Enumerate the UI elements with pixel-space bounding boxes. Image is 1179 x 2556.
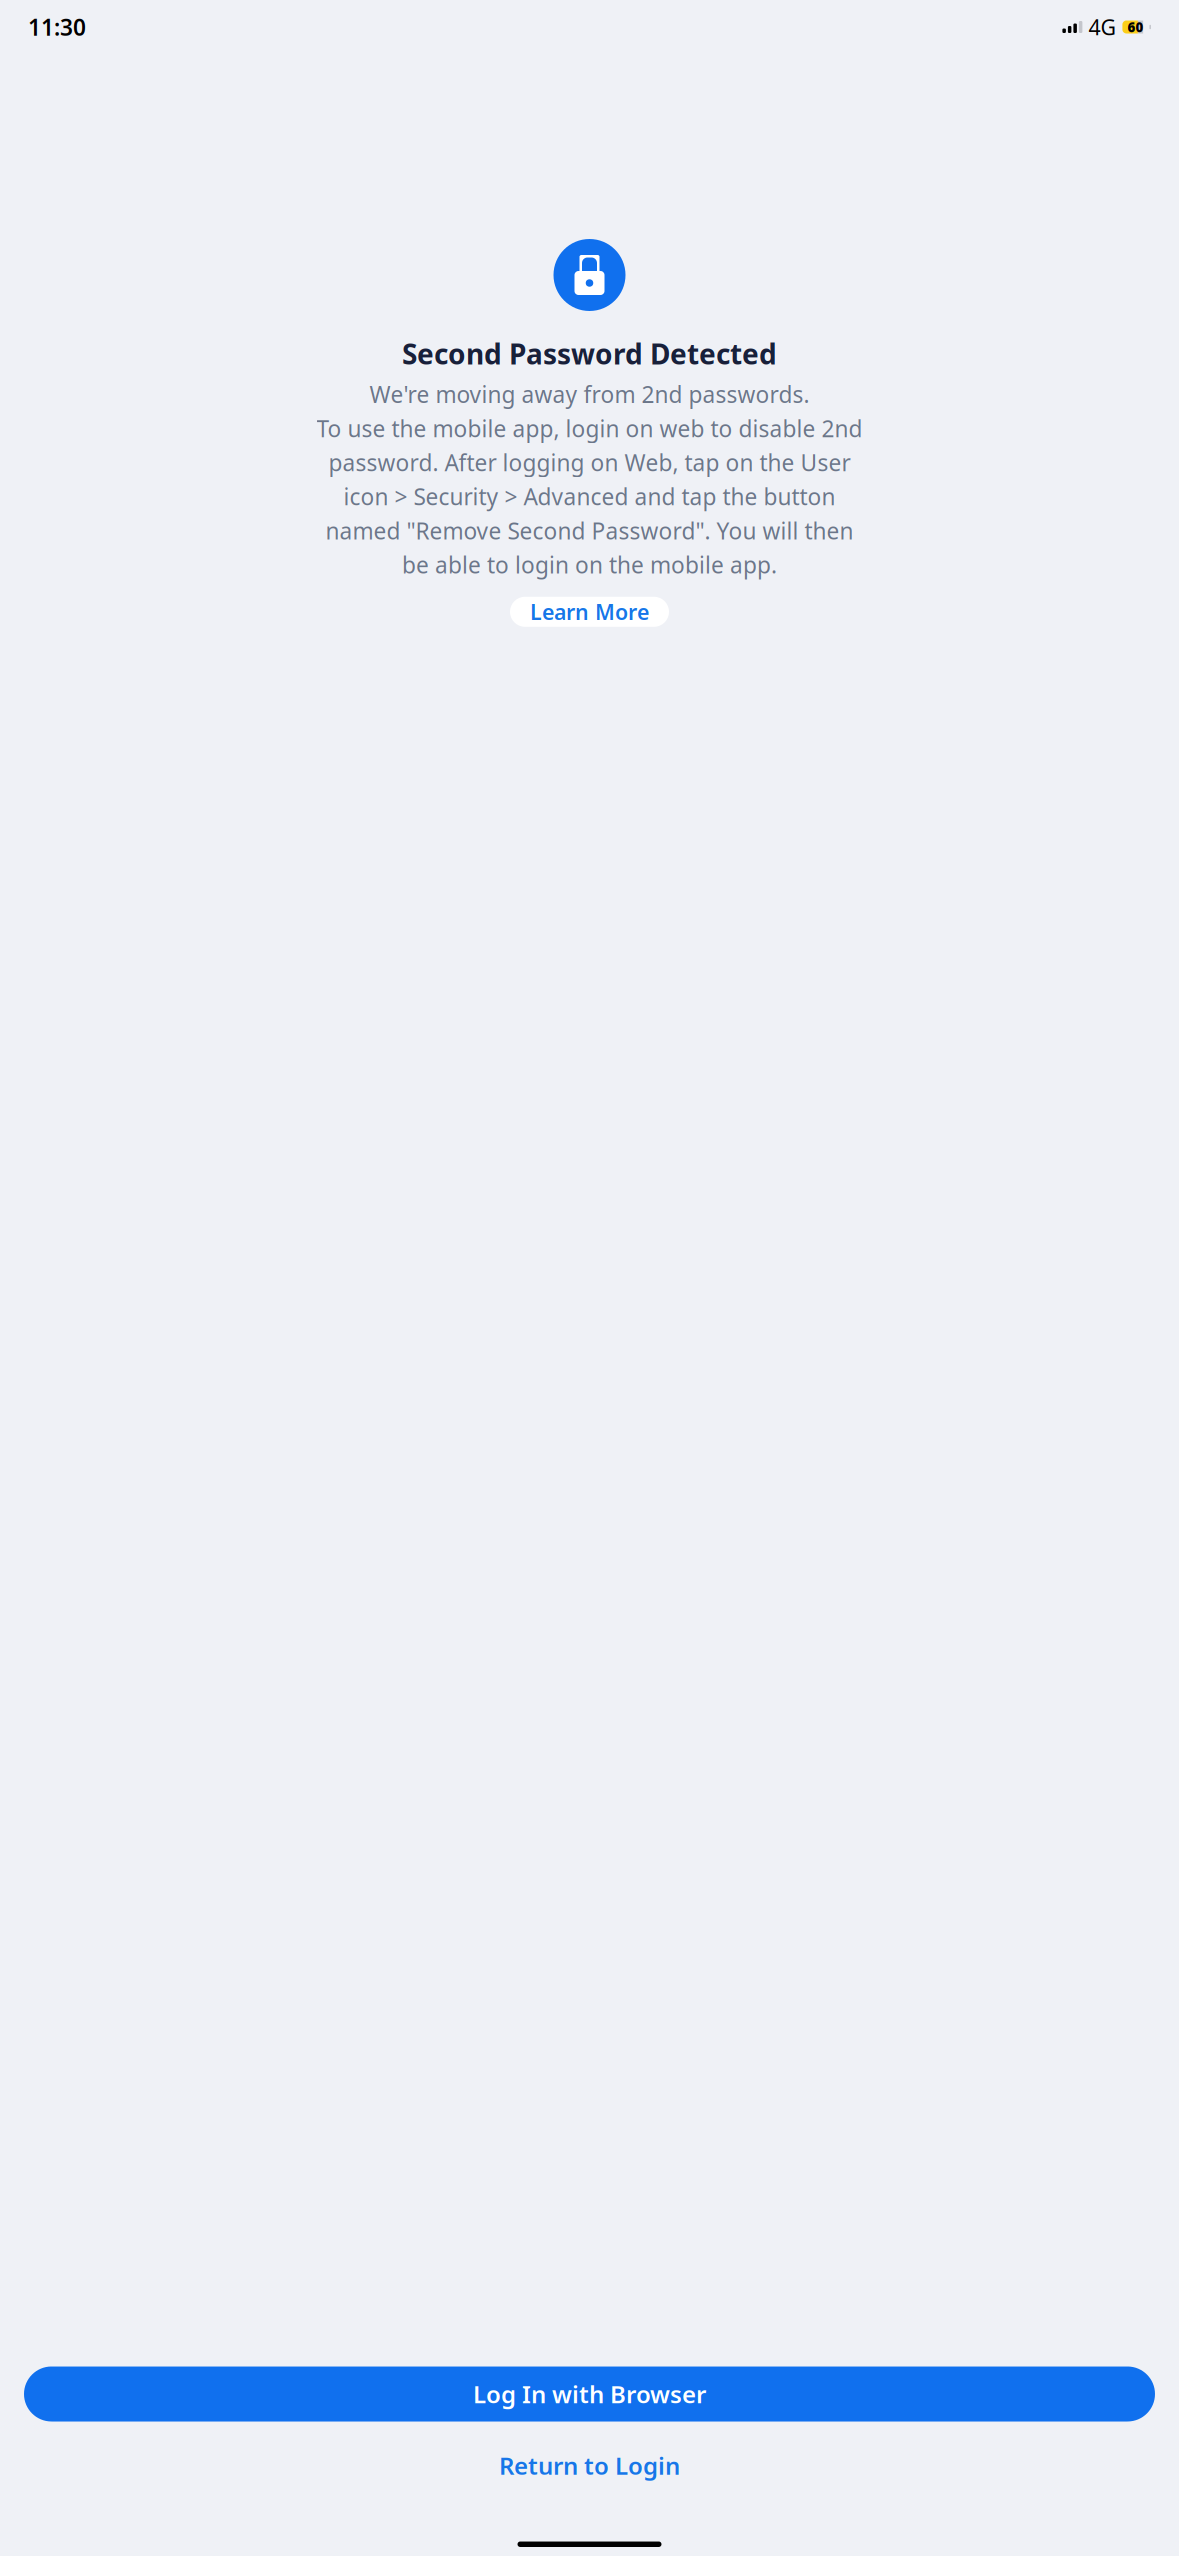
button[interactable]: Return to Login <box>24 2443 1155 2487</box>
staticText: 4G <box>1088 13 1116 41</box>
staticText: Log In with Browser <box>473 2378 706 2410</box>
staticText: named "Remove Second Password". You will… <box>325 516 853 546</box>
staticText: be able to login on the mobile app. <box>402 550 777 580</box>
staticText: Second Password Detected <box>402 335 777 372</box>
staticText: password. After logging on Web, tap on t… <box>328 447 850 477</box>
staticText: 60 <box>1127 18 1143 36</box>
staticText: We're moving away from 2nd passwords. <box>369 379 809 409</box>
button[interactable]: Learn More <box>510 597 669 627</box>
staticText: icon > Security > Advanced and tap the b… <box>343 481 835 512</box>
staticText: Learn More <box>530 598 649 626</box>
button[interactable]: Log In with Browser <box>24 2366 1155 2421</box>
staticText: Return to Login <box>499 2450 680 2481</box>
staticText: To use the mobile app, login on web to d… <box>316 413 862 443</box>
staticText: 11:30 <box>28 12 86 42</box>
